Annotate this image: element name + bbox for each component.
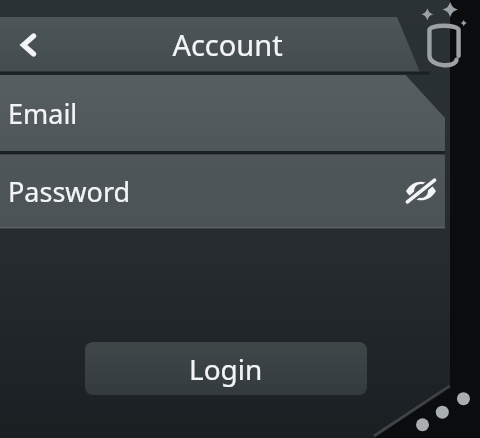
staticText: Email bbox=[8, 95, 78, 132]
staticText: Login bbox=[189, 350, 263, 388]
button[interactable]: Back bbox=[2, 17, 58, 72]
staticText: Account bbox=[172, 25, 283, 64]
staticText: Password bbox=[8, 173, 131, 210]
button[interactable]: Password bbox=[0, 155, 480, 228]
button[interactable]: Assistant bbox=[418, 4, 470, 72]
button[interactable]: Login bbox=[85, 342, 367, 395]
button[interactable]: Show password bbox=[394, 162, 448, 220]
button[interactable]: Email bbox=[0, 75, 480, 151]
